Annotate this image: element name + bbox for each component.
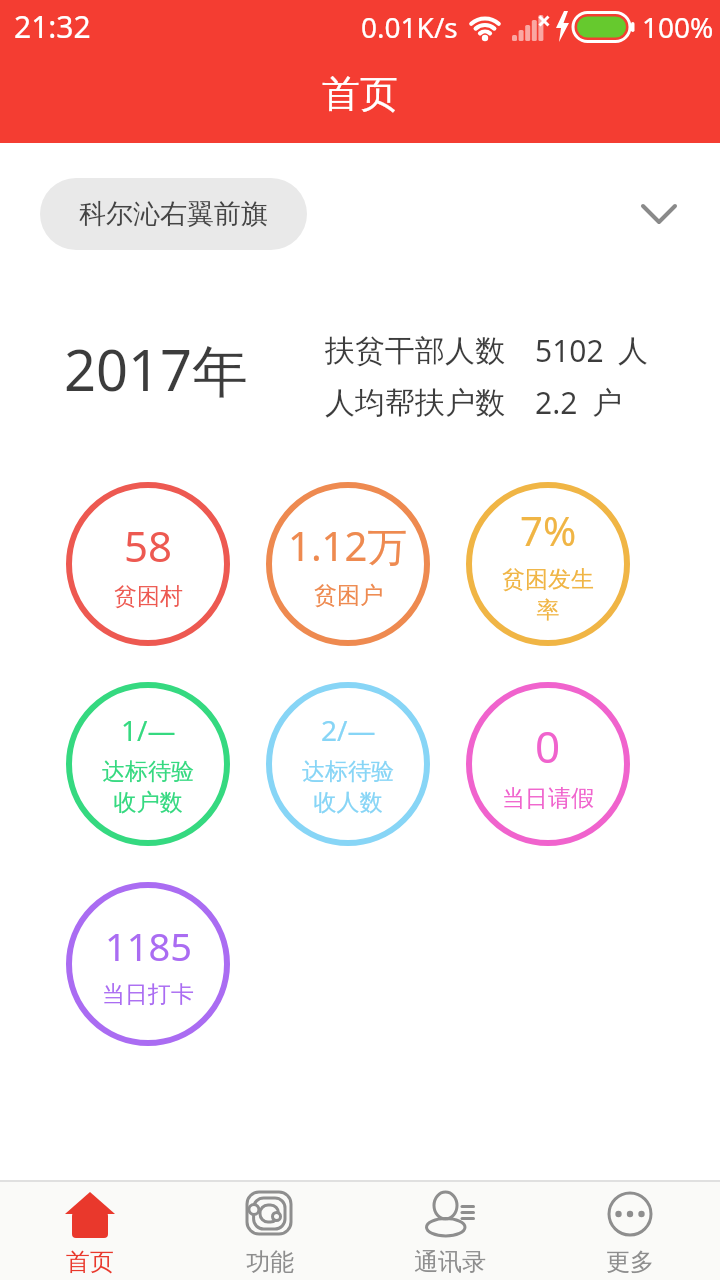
staticText: 贫困户: [314, 581, 383, 610]
staticText: 7%: [520, 503, 577, 557]
staticText: 100%: [642, 8, 714, 46]
staticText: 首页: [322, 70, 398, 118]
button[interactable]: 更多: [540, 1182, 720, 1277]
staticText: 通讯录: [414, 1247, 486, 1277]
button[interactable]: 7%: [466, 482, 630, 646]
button[interactable]: 功能: [180, 1182, 360, 1277]
staticText: 更多: [606, 1247, 654, 1277]
staticText: 贫困村: [114, 582, 183, 611]
button[interactable]: 1185: [66, 882, 230, 1046]
button[interactable]: 科尔沁右翼前旗: [40, 178, 307, 250]
staticText: 58: [124, 517, 173, 574]
staticText: 1.12万: [288, 518, 408, 573]
staticText: 当日打卡: [102, 980, 194, 1009]
button[interactable]: 58: [66, 482, 230, 646]
staticText: 首页: [66, 1247, 114, 1277]
staticText: 21:32: [14, 6, 91, 47]
staticText: 人: [618, 332, 648, 370]
button[interactable]: [640, 201, 678, 227]
staticText: 户: [592, 384, 622, 422]
staticText: 达标待验 收户数: [102, 757, 194, 817]
staticText: 功能: [246, 1247, 294, 1277]
button[interactable]: 2/—: [266, 682, 430, 846]
staticText: 0.01K/s: [361, 8, 458, 46]
staticText: 科尔沁右翼前旗: [79, 197, 268, 231]
button[interactable]: 1.12万: [266, 482, 430, 646]
staticText: 1/—: [121, 711, 176, 749]
staticText: 扶贫干部人数: [325, 332, 505, 370]
staticText: 1185: [105, 920, 192, 972]
button[interactable]: 1/—: [66, 682, 230, 846]
staticText: 2/—: [321, 711, 376, 749]
button[interactable]: 通讯录: [360, 1182, 540, 1277]
staticText: 2.2: [535, 382, 578, 423]
staticText: 0: [535, 716, 561, 776]
staticText: 人均帮扶户数: [325, 384, 505, 422]
staticText: 2017年: [64, 331, 249, 407]
staticText: 5102: [535, 330, 604, 371]
staticText: 当日请假: [502, 784, 594, 813]
button[interactable]: 0: [466, 682, 630, 846]
staticText: 达标待验 收人数: [302, 757, 394, 817]
button[interactable]: 首页: [0, 1182, 180, 1277]
staticText: 贫困发生 率: [502, 565, 594, 625]
